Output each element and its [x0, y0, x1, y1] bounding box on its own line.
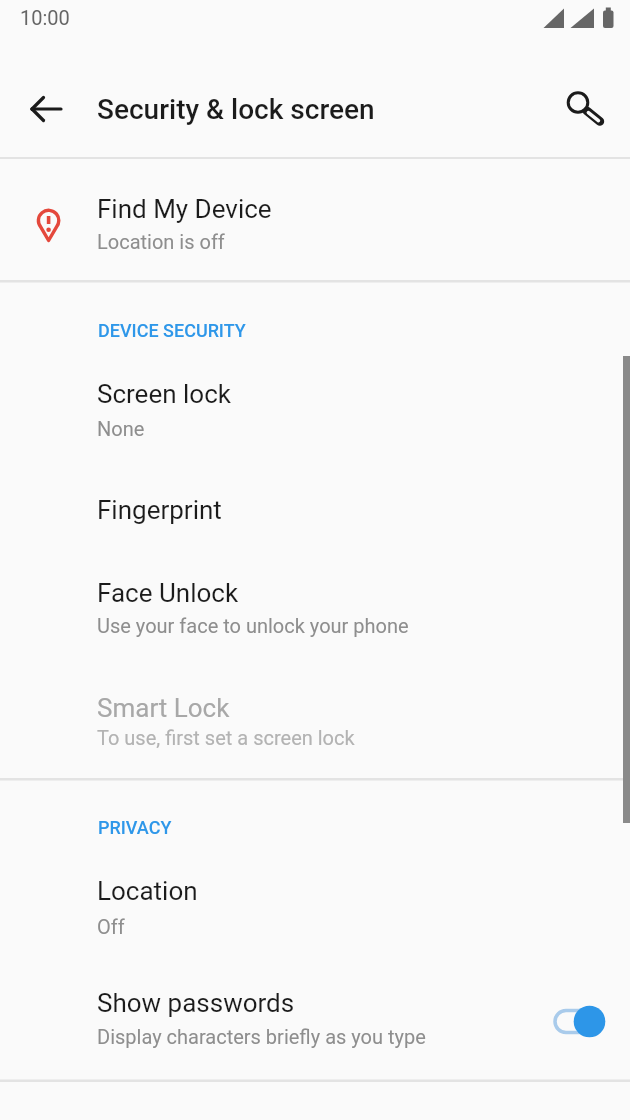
staticText: Location is off — [97, 230, 225, 253]
staticText: Off — [97, 915, 125, 938]
staticText: 10:00 — [20, 6, 70, 29]
staticText: Smart Lock — [97, 693, 230, 723]
button[interactable]: Location — [0, 845, 630, 960]
staticText: PRIVACY — [98, 817, 172, 838]
button[interactable]: Show passwords — [0, 960, 630, 1079]
staticText: Screen lock — [97, 379, 231, 409]
button[interactable] — [554, 79, 602, 127]
staticText: Use your face to unlock your phone — [97, 614, 409, 637]
staticText: Face Unlock — [97, 578, 239, 608]
button[interactable] — [22, 85, 70, 133]
staticText: Display characters briefly as you type — [97, 1025, 426, 1048]
button[interactable]: Face Unlock — [0, 556, 630, 668]
staticText: Security & lock screen — [97, 93, 375, 126]
staticText: Location — [97, 876, 198, 906]
staticText: Show passwords — [97, 988, 295, 1018]
staticText: None — [97, 417, 145, 440]
button[interactable]: Find My Device — [0, 159, 630, 280]
staticText: Fingerprint — [97, 495, 222, 525]
staticText: To use, first set a screen lock — [97, 726, 355, 749]
button[interactable]: Screen lock — [0, 352, 630, 470]
staticText: DEVICE SECURITY — [98, 320, 246, 341]
button[interactable]: Fingerprint — [0, 470, 630, 556]
button[interactable]: Smart Lock — [0, 668, 630, 778]
staticText: Find My Device — [97, 194, 272, 224]
